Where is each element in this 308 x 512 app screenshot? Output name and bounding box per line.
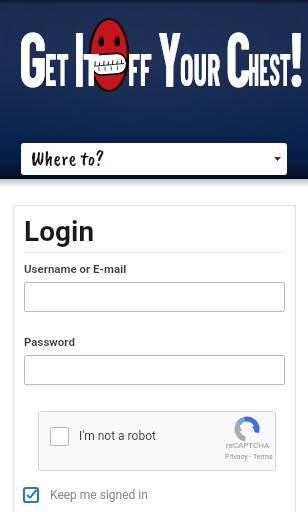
staticText: I'm not a robot bbox=[79, 429, 156, 443]
staticText: G bbox=[19, 11, 47, 102]
staticText: OUR bbox=[180, 41, 221, 95]
staticText: I bbox=[74, 11, 85, 102]
button[interactable] bbox=[24, 282, 285, 312]
button[interactable] bbox=[24, 355, 285, 385]
staticText: C bbox=[226, 11, 251, 102]
staticText: T bbox=[83, 41, 101, 95]
button[interactable]: I'm not a robot bbox=[38, 411, 276, 471]
staticText: Where to? bbox=[31, 145, 105, 171]
staticText: Username or E-mail bbox=[24, 262, 127, 275]
staticText: Login bbox=[24, 215, 95, 248]
staticText: FF bbox=[128, 41, 152, 95]
staticText: Keep me signed in bbox=[50, 488, 148, 502]
staticText: Y bbox=[158, 11, 182, 102]
staticText: Privacy - Terms bbox=[225, 453, 273, 461]
staticText: HEST bbox=[248, 41, 291, 95]
staticText: ET bbox=[45, 41, 69, 95]
staticText: ! bbox=[288, 11, 306, 102]
button[interactable]: Where to? bbox=[21, 143, 287, 175]
staticText: Password bbox=[24, 335, 75, 348]
staticText: reCAPTCHA bbox=[226, 441, 270, 450]
button[interactable]: Keep me signed in bbox=[24, 488, 148, 502]
